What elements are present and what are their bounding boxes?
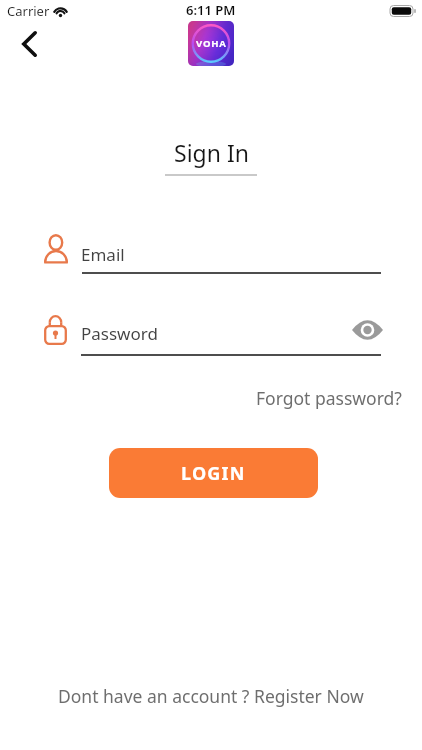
button[interactable]: Password <box>0 311 422 357</box>
staticText: Carrier <box>7 2 50 20</box>
button[interactable] <box>347 315 387 345</box>
staticText: Sign In <box>174 137 249 168</box>
button[interactable]: Forgot password? <box>256 386 402 410</box>
staticText: Email <box>81 243 125 266</box>
staticText: Password <box>81 322 158 345</box>
staticText: Forgot password? <box>256 386 402 410</box>
button[interactable]: Dont have an account ? Register Now <box>58 684 364 708</box>
staticText: 6:11 PM <box>186 1 236 19</box>
button[interactable]: LOGIN <box>109 448 318 498</box>
staticText: LOGIN <box>181 461 246 486</box>
button[interactable]: Email <box>0 230 422 274</box>
staticText: Dont have an account ? Register Now <box>58 684 364 708</box>
button[interactable] <box>8 22 50 66</box>
staticText: VOHA <box>196 37 227 50</box>
